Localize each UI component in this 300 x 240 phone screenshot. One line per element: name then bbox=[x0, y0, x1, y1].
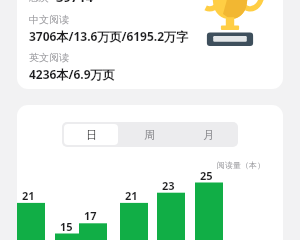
staticText: 23 bbox=[162, 178, 175, 193]
staticText: 日 bbox=[86, 128, 97, 142]
staticText: 英文阅读 bbox=[29, 51, 69, 64]
staticText: 周 bbox=[144, 128, 155, 142]
staticText: 39714 bbox=[56, 0, 94, 6]
button[interactable]: 日 bbox=[64, 124, 118, 145]
staticText: 21 bbox=[22, 188, 35, 203]
other: Achievement trophy bbox=[195, 0, 265, 46]
staticText: 25 bbox=[200, 168, 213, 183]
staticText: 3706本/13.6万页/6195.2万字 bbox=[29, 28, 189, 44]
staticText: 4236本/6.9万页 bbox=[29, 66, 115, 82]
staticText: 21 bbox=[125, 188, 138, 203]
staticText: 中文阅读 bbox=[29, 13, 69, 26]
staticText: 15 bbox=[60, 219, 73, 234]
staticText: 月 bbox=[203, 128, 214, 142]
staticText: 阅读量（本） bbox=[217, 160, 265, 170]
staticText: 17 bbox=[84, 208, 97, 223]
staticText: 总次 bbox=[29, 0, 49, 4]
button[interactable]: 月 bbox=[181, 124, 236, 145]
button[interactable]: 周 bbox=[122, 124, 177, 145]
